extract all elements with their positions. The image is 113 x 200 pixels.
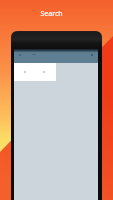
staticText: Search [40,9,63,19]
button[interactable]: Search [36,9,67,19]
